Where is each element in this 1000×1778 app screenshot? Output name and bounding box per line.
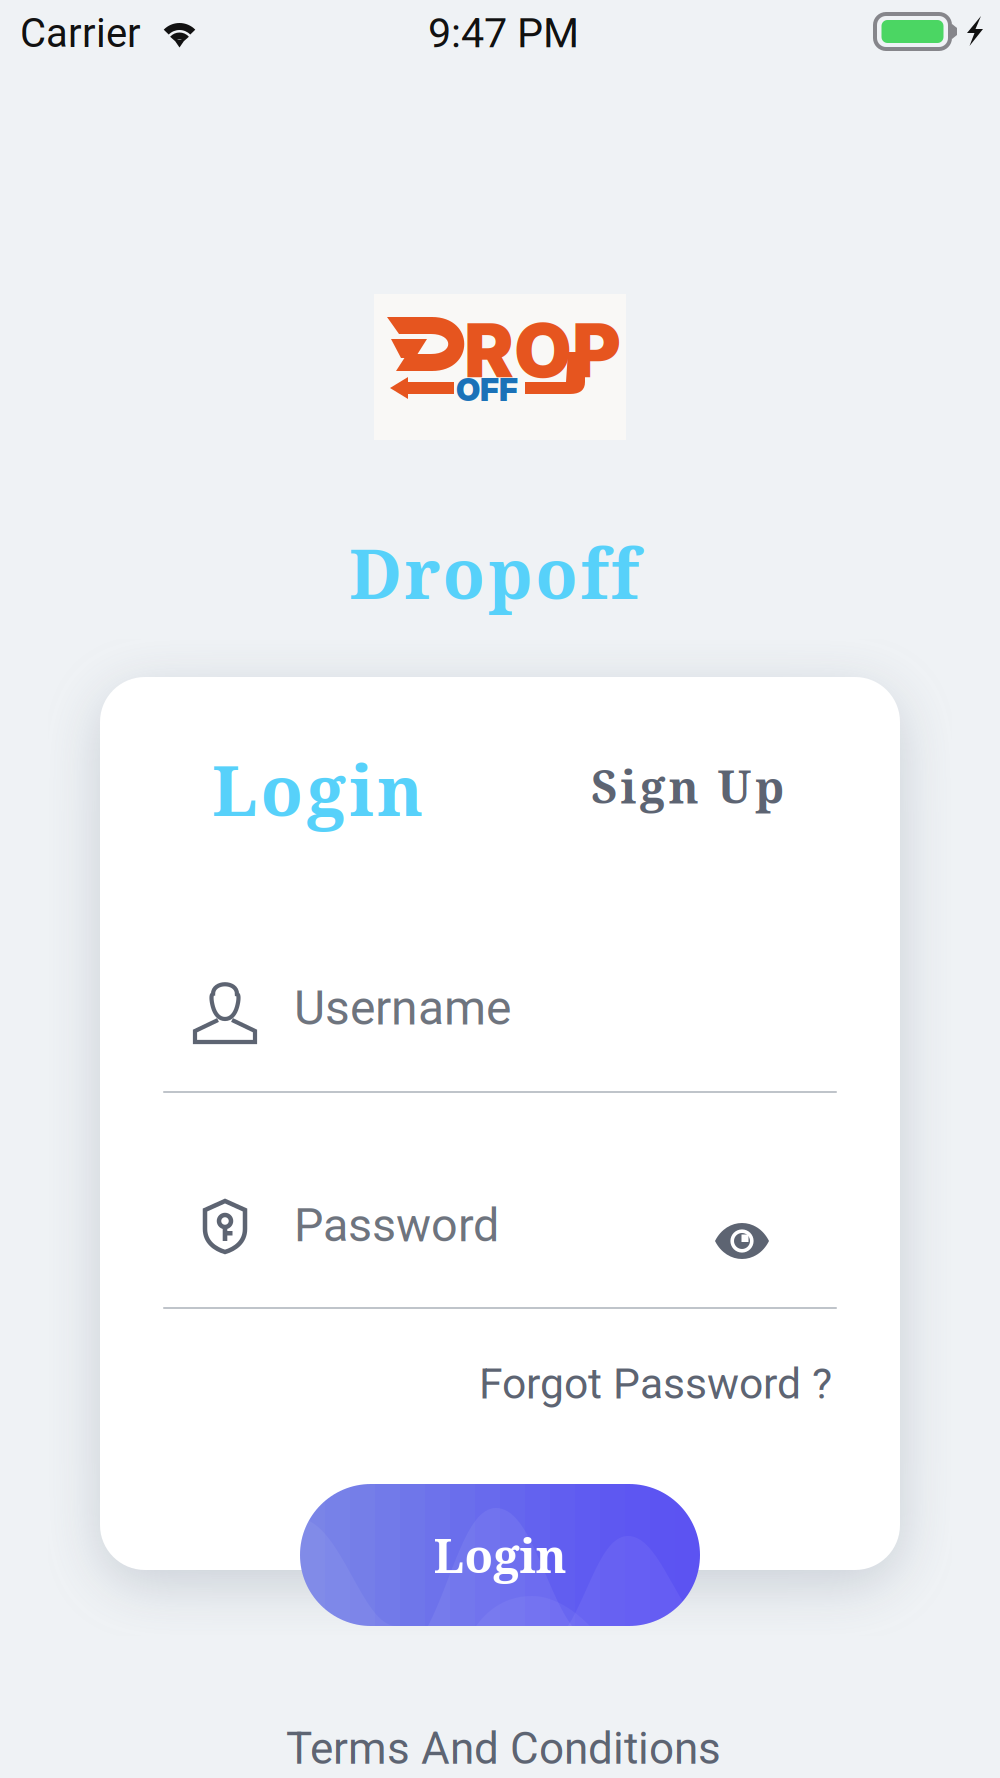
button[interactable]: Sign Up [591,755,784,817]
staticText: Login [212,742,423,836]
staticText: Terms And Conditions [286,1723,721,1775]
button[interactable]: Show password [714,1222,770,1260]
staticText: ROP [464,305,621,395]
staticText: Username [294,980,511,1036]
button[interactable]: Forgot Password ? [479,1359,832,1409]
staticText: Sign Up [591,755,784,817]
button[interactable]: Login [212,742,423,836]
staticText: Password [294,1198,499,1253]
staticText: OFF [456,370,518,409]
staticText: Dropoff [349,525,639,619]
staticText: Carrier [20,10,141,57]
button[interactable]: Login [300,1484,700,1626]
staticText: 9:47 PM [428,9,579,57]
staticText: Forgot Password ? [479,1359,832,1409]
staticText: Login [433,1523,566,1587]
button[interactable]: Terms And Conditions [286,1723,721,1775]
